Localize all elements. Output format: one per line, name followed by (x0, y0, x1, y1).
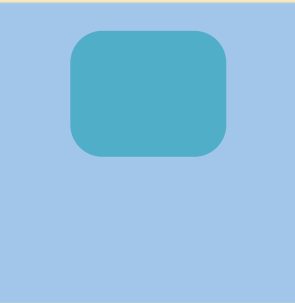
button[interactable]: Open card (69, 31, 226, 157)
